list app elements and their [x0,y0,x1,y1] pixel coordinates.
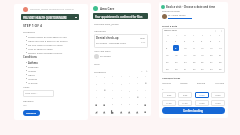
button[interactable]: Allergy [26,68,83,72]
button[interactable]: Tool [110,74,115,79]
button[interactable]: Have you had a fever in 48 hours? [26,38,83,42]
button[interactable]: Tool [102,88,107,93]
button[interactable]: 32 [191,66,197,72]
button[interactable]: 8 [164,45,170,51]
button[interactable]: Tool [102,109,107,114]
button[interactable]: Please select all that apply to you [26,34,83,38]
button[interactable]: Tool [127,74,132,79]
button[interactable]: 5 [199,38,205,44]
button[interactable]: Arthritis [26,80,83,84]
button[interactable]: Confirm booking [162,107,225,114]
button[interactable]: 7 [217,38,223,44]
button[interactable]: 14 [217,45,223,51]
button[interactable]: Tool [143,102,148,107]
button[interactable]: Tool [110,102,115,107]
button[interactable]: Tool [127,109,132,114]
button[interactable]: Tool [127,81,132,86]
button[interactable]: Collapse [141,69,143,73]
button[interactable]: 28 [217,59,223,65]
button[interactable]: Morning [162,82,171,85]
button[interactable]: PRE-VISIT HEALTH QUESTIONNAIRE [21,14,79,20]
button[interactable]: Recent travel outside country [26,50,83,54]
button[interactable]: 11:30 [178,100,192,106]
button[interactable]: Tool [119,81,124,86]
button[interactable]: Type here... [23,90,54,97]
button[interactable]: Anemia [26,76,83,80]
button[interactable]: 10:30 [211,92,225,98]
button[interactable]: Tool [110,109,115,114]
button[interactable]: Tool [143,95,148,100]
button[interactable]: 12:00 [195,100,209,106]
button[interactable]: Your appointment is confirmed for Mon [93,13,148,19]
button[interactable]: Tool [119,74,124,79]
button[interactable]: 16 [173,52,179,58]
button[interactable]: Tool [143,88,148,93]
button[interactable]: Tool [143,81,148,86]
button[interactable]: 10 [182,45,188,51]
button[interactable]: 23 [173,59,179,65]
button[interactable]: 9:30 [178,92,192,98]
button[interactable]: Tool [135,88,140,93]
button[interactable]: Tool [102,102,107,107]
button[interactable]: Tool [135,109,140,114]
button[interactable]: 11 [191,45,197,51]
button[interactable]: 17 [182,52,188,58]
button[interactable]: Dr. Okafor [94,54,111,59]
button[interactable]: 24 [182,59,188,65]
button[interactable]: 20 [208,52,214,58]
button[interactable]: Tool [110,81,115,86]
button[interactable]: 9:00 [162,92,176,98]
button[interactable]: Loss of taste or smell [26,46,83,50]
button[interactable]: 25 [191,59,197,65]
button[interactable]: 11:00 [162,100,176,106]
button[interactable]: 29 [164,66,170,72]
button[interactable]: 10:00 [195,92,209,98]
button[interactable]: 21 [217,52,223,58]
button[interactable]: Expand [146,69,148,73]
button[interactable]: Tool [94,88,99,93]
button[interactable]: Do you have a cough or sore? [26,42,83,46]
button[interactable]: Tool [135,74,140,79]
button[interactable]: Tool [127,95,132,100]
button[interactable]: Diabetes [26,64,83,68]
button[interactable]: Tool [135,102,140,107]
button[interactable]: 30 [173,66,179,72]
button[interactable]: 4 [191,38,197,44]
button[interactable]: Tool [94,109,99,114]
button[interactable]: Tool [94,95,99,100]
button[interactable]: 26 [199,59,205,65]
button[interactable]: 27 [208,59,214,65]
button[interactable]: 12 [199,45,205,51]
button[interactable]: Dental check-up [94,34,148,48]
button[interactable]: 19 [199,52,205,58]
button[interactable]: 15 [164,52,170,58]
button[interactable]: 35 [217,66,223,72]
button[interactable]: 3 [182,38,188,44]
button[interactable]: Tool [135,95,140,100]
button[interactable]: Tool [102,74,107,79]
button[interactable]: Evening [197,82,206,85]
button[interactable]: Next month [220,29,223,32]
button[interactable]: 34 [208,66,214,72]
button[interactable]: Any time [215,82,225,85]
button[interactable]: Tool [127,102,132,107]
button[interactable]: 18 [191,52,197,58]
button[interactable]: 12:30 [211,100,225,106]
button[interactable]: Tool [102,95,107,100]
button[interactable]: Tool [119,109,124,114]
button[interactable]: 9 [173,45,179,51]
button[interactable]: Tool [119,88,124,93]
button[interactable]: 22 [164,59,170,65]
button[interactable]: 33 [199,66,205,72]
button[interactable]: Tool [127,88,132,93]
button[interactable]: 13 [208,45,214,51]
button[interactable]: Tool [94,74,99,79]
button[interactable]: Continue [23,110,40,116]
button[interactable]: Tool [143,109,148,114]
button[interactable]: Tool [119,102,124,107]
button[interactable]: Tool [102,81,107,86]
button[interactable]: Tool [119,95,124,100]
button[interactable]: 31 [182,66,188,72]
button[interactable]: Previous month [214,29,217,32]
button[interactable]: Tool [135,81,140,86]
